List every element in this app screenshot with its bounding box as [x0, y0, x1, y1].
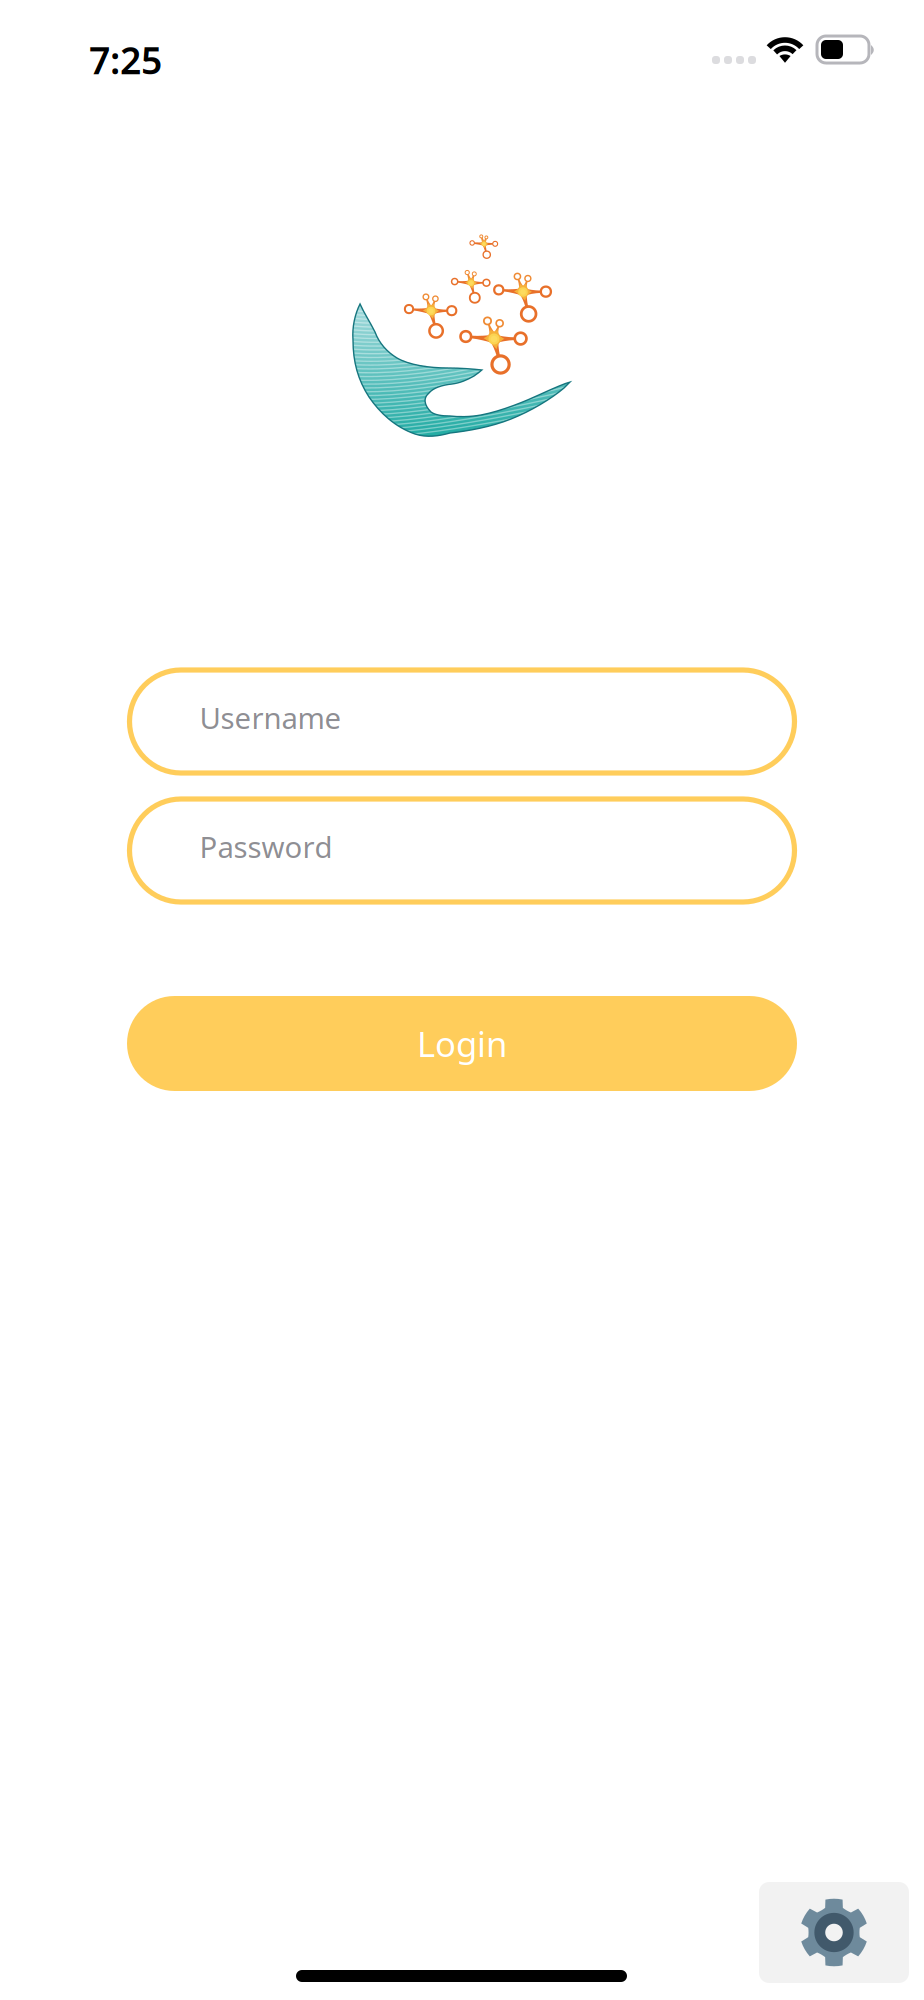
staticText: Username [199, 698, 341, 737]
button[interactable]: Username [129, 670, 794, 773]
staticText: Login [417, 1020, 507, 1066]
staticText: 7:25 [89, 35, 162, 85]
button[interactable]: Password [129, 799, 794, 902]
staticText: Password [199, 827, 332, 866]
button[interactable]: Login [127, 996, 797, 1091]
button[interactable]: Settings [759, 1882, 909, 1983]
